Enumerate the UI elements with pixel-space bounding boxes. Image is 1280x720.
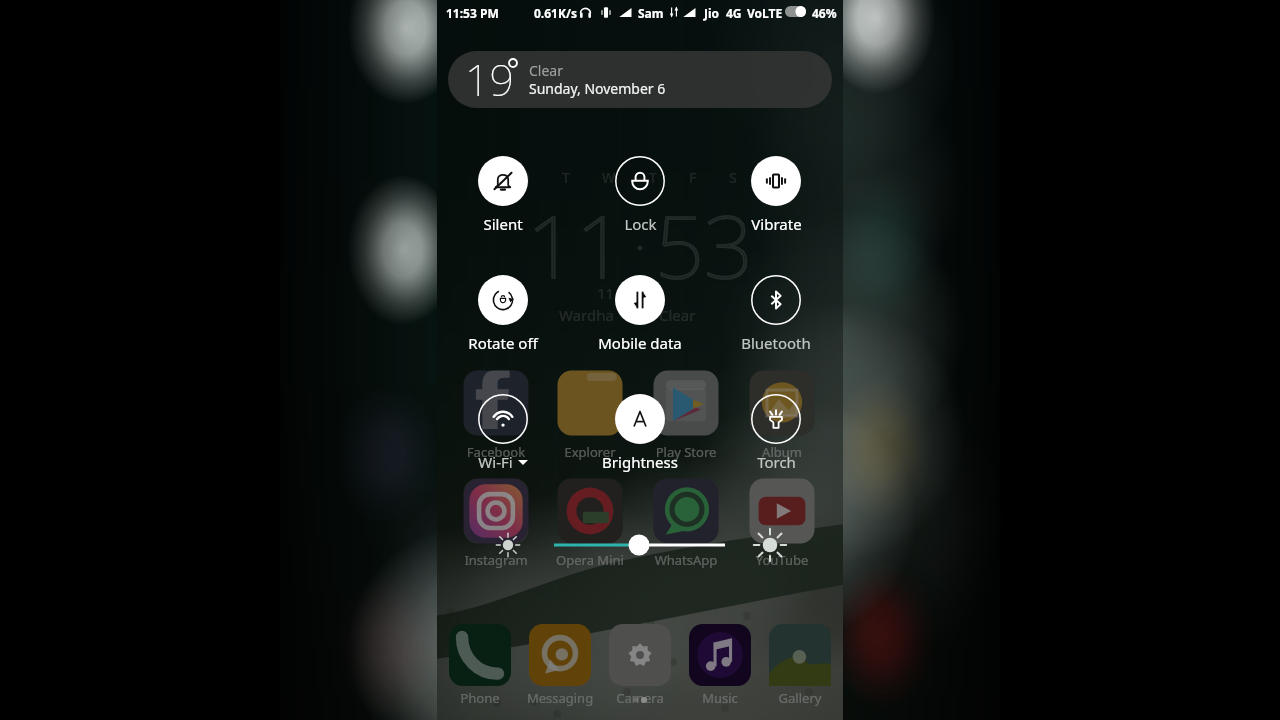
staticText: Phone bbox=[425, 689, 535, 707]
button[interactable]: Silent bbox=[443, 156, 563, 234]
staticText: T bbox=[562, 168, 570, 187]
staticText: Clear bbox=[659, 305, 696, 325]
staticText: 46% bbox=[812, 5, 837, 21]
button[interactable]: Instagram bbox=[441, 551, 551, 569]
button[interactable]: Camera bbox=[585, 689, 695, 707]
button[interactable]: Opera Mini bbox=[535, 551, 645, 569]
staticText: 11 bbox=[597, 283, 615, 303]
staticText: Explorer bbox=[535, 443, 645, 461]
staticText: Vibrate bbox=[751, 214, 802, 234]
staticText: Lock bbox=[624, 214, 657, 234]
button[interactable]: Brightness bbox=[580, 394, 700, 472]
button[interactable]: YouTube bbox=[727, 551, 837, 569]
staticText: T bbox=[649, 168, 657, 187]
staticText: F bbox=[689, 168, 697, 187]
staticText: S bbox=[769, 168, 777, 187]
staticText: Music bbox=[665, 689, 775, 707]
button[interactable]: Wi-Fi bbox=[443, 394, 563, 472]
button[interactable]: Vibrate bbox=[716, 156, 836, 234]
staticText: 19 bbox=[465, 51, 515, 107]
staticText: YouTube bbox=[727, 551, 837, 569]
staticText: Play Store bbox=[631, 443, 741, 461]
button[interactable]: Gallery bbox=[745, 689, 855, 707]
staticText: Camera bbox=[585, 689, 695, 707]
staticText: Sun bbox=[637, 283, 664, 303]
staticText: Wi-Fi bbox=[478, 452, 513, 472]
staticText: M bbox=[517, 168, 530, 187]
button[interactable]: Facebook bbox=[441, 443, 551, 461]
button[interactable]: Torch bbox=[716, 394, 836, 472]
staticText: Bluetooth bbox=[741, 333, 811, 353]
button[interactable]: Phone bbox=[425, 689, 535, 707]
button[interactable]: Mobile data bbox=[580, 275, 700, 353]
staticText: Silent bbox=[483, 214, 523, 234]
staticText: WhatsApp bbox=[631, 551, 741, 569]
button[interactable]: Brightness slider bbox=[437, 0, 843, 720]
staticText: 4G bbox=[726, 5, 742, 21]
staticText: VoLTE bbox=[747, 5, 783, 21]
staticText: Messaging bbox=[505, 689, 615, 707]
staticText: Opera Mini bbox=[535, 551, 645, 569]
staticText: 53 bbox=[655, 186, 754, 303]
button[interactable]: WhatsApp bbox=[631, 551, 741, 569]
staticText: Facebook bbox=[441, 443, 551, 461]
staticText: Brightness bbox=[602, 452, 678, 472]
staticText: Sam bbox=[638, 5, 664, 21]
button[interactable]: Rotate off bbox=[443, 275, 563, 353]
staticText: Torch bbox=[757, 452, 796, 472]
button[interactable]: Play Store bbox=[631, 443, 741, 461]
staticText: Jio bbox=[704, 5, 720, 21]
staticText: Rotate off bbox=[468, 333, 538, 353]
button[interactable]: 19 bbox=[448, 51, 832, 108]
staticText: 11 bbox=[527, 186, 626, 303]
staticText: Mobile data bbox=[598, 333, 682, 353]
staticText: Gallery bbox=[745, 689, 855, 707]
staticText: W bbox=[602, 168, 616, 187]
staticText: 11:53 PM bbox=[446, 5, 499, 21]
staticText: Instagram bbox=[441, 551, 551, 569]
staticText: Clear bbox=[529, 61, 563, 80]
staticText: S bbox=[729, 168, 737, 187]
button[interactable]: Bluetooth bbox=[716, 275, 836, 353]
staticText: Album bbox=[727, 443, 837, 461]
button[interactable]: Music bbox=[665, 689, 775, 707]
staticText: Sunday, November 6 bbox=[529, 79, 666, 98]
button[interactable]: Lock bbox=[580, 156, 700, 234]
staticText: 0.61K/s bbox=[534, 5, 577, 21]
staticText: Wardha bbox=[559, 305, 614, 325]
button[interactable]: Messaging bbox=[505, 689, 615, 707]
button[interactable]: Album bbox=[727, 443, 837, 461]
button[interactable]: Explorer bbox=[535, 443, 645, 461]
